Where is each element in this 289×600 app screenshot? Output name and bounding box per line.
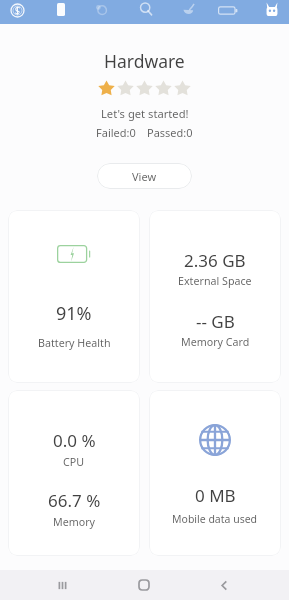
staticText: Mobile data used — [172, 512, 258, 526]
staticText: 91% — [56, 301, 92, 326]
staticText: Memory — [53, 515, 96, 530]
staticText: Hardware — [104, 49, 185, 73]
button[interactable]: Recents — [44, 570, 80, 600]
button[interactable]: Search — [139, 2, 153, 16]
button[interactable]: Home — [126, 570, 162, 600]
staticText: External Space — [178, 274, 252, 289]
button[interactable]: Sync — [95, 3, 108, 16]
staticText: View — [132, 169, 157, 184]
button[interactable]: External space card — [149, 210, 281, 383]
button[interactable]: Payments — [10, 3, 25, 18]
button[interactable]: CPU and memory card — [8, 390, 140, 556]
button[interactable]: Mobile data card — [149, 390, 281, 556]
button[interactable]: Battery — [218, 6, 238, 15]
button[interactable]: Back — [206, 570, 242, 600]
button[interactable]: View — [97, 163, 192, 189]
staticText: 0 MB — [195, 484, 236, 507]
button[interactable]: Cast — [182, 3, 196, 17]
staticText: Memory Card — [181, 335, 250, 350]
staticText: Passed:0 — [147, 125, 193, 140]
staticText: 0.0 % — [53, 429, 96, 452]
staticText: 2.36 GB — [184, 249, 246, 272]
button[interactable]: Battery health card — [8, 210, 140, 383]
staticText: Let's get started! — [101, 106, 189, 121]
button[interactable]: Device — [57, 3, 65, 16]
staticText: 66.7 % — [48, 489, 101, 512]
button[interactable]: App — [264, 2, 280, 17]
staticText: Failed:0 — [96, 125, 136, 140]
staticText: -- GB — [196, 310, 235, 333]
staticText: Battery Health — [38, 336, 111, 351]
staticText: CPU — [63, 455, 85, 470]
